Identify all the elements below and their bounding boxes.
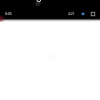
button[interactable]: Cast bbox=[81, 12, 85, 16]
staticText: 0:45 bbox=[5, 11, 12, 16]
button[interactable]: Fullscreen bbox=[91, 12, 95, 16]
button[interactable] bbox=[0, 0, 100, 18]
staticText: 4:21 bbox=[68, 11, 75, 16]
